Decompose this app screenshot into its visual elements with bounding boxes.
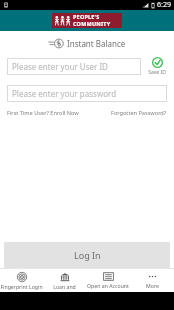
staticText: COMMUNITY xyxy=(73,20,111,27)
staticText: First Time User? Enroll Now xyxy=(7,109,79,117)
button[interactable]: First Time User? Enroll Now xyxy=(7,109,79,117)
button[interactable]: Please enter your password xyxy=(7,85,167,102)
button[interactable]: Open an Account xyxy=(86,269,130,292)
staticText: 6:29 xyxy=(157,0,171,10)
staticText: Forgotten Password? xyxy=(111,109,167,117)
staticText: PEOPLE'S xyxy=(73,13,100,20)
button[interactable]: Instant Balance xyxy=(0,35,174,51)
button[interactable]: Fingerprint Login xyxy=(0,269,43,292)
staticText: Fingerprint Login xyxy=(0,283,43,290)
button[interactable]: More xyxy=(130,269,174,292)
button[interactable]: Please enter your User ID xyxy=(7,58,141,75)
staticText: Log In xyxy=(74,249,101,261)
button[interactable]: Save ID xyxy=(145,57,169,76)
staticText: Instant Balance xyxy=(67,38,126,49)
staticText: Open an Account xyxy=(87,282,129,289)
staticText: Loan and Deposi... xyxy=(43,283,86,290)
staticText: Please enter your User ID xyxy=(12,61,108,72)
button[interactable]: Forgotten Password? xyxy=(111,109,167,117)
button[interactable]: Log In xyxy=(4,242,170,268)
button[interactable]: Loan and Deposi... xyxy=(43,269,86,292)
staticText: Please enter your password xyxy=(12,88,117,99)
staticText: Save ID xyxy=(148,69,166,76)
staticText: More xyxy=(146,282,159,289)
